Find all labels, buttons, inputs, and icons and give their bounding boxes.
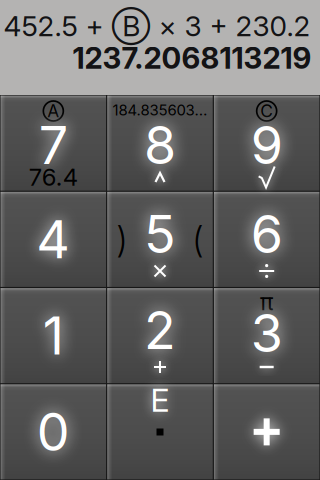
staticText: 1 (43, 304, 64, 367)
button[interactable]: Three, subtract (0, 0, 320, 480)
staticText: E (150, 381, 169, 419)
staticText: 9 (251, 113, 283, 176)
staticText: 76.4 (29, 162, 78, 191)
staticText: 2 (144, 298, 176, 361)
staticText: 0 (37, 400, 70, 463)
staticText: 6 (251, 202, 283, 265)
staticText: C (260, 100, 273, 121)
staticText: 7 (39, 113, 68, 176)
staticText: 452.5 + Ⓑ × 3 + 230.2 (3, 9, 310, 43)
button[interactable]: Seven, memory A (0, 0, 320, 480)
button[interactable]: Five, multiply (0, 0, 320, 480)
button[interactable]: One (0, 0, 320, 480)
staticText: 8 (144, 113, 176, 176)
staticText: 3 (251, 301, 283, 364)
staticText: ) (116, 218, 127, 261)
button[interactable]: Eight, power (0, 0, 320, 480)
button[interactable]: Four (0, 0, 320, 480)
staticText: A (47, 100, 59, 121)
button[interactable]: Two, add (0, 0, 320, 480)
staticText: π (260, 288, 274, 316)
button[interactable]: Plus (0, 0, 320, 480)
staticText: 184.835603… (112, 101, 207, 119)
button[interactable]: Zero (0, 0, 320, 480)
staticText: 4 (36, 208, 70, 271)
button[interactable]: Decimal point, exponent (0, 0, 320, 480)
staticText: ( (192, 218, 203, 261)
button[interactable]: Six, divide (0, 0, 320, 480)
button[interactable]: Nine, square root (0, 0, 320, 480)
staticText: 1237.2068113219 (72, 40, 311, 76)
staticText: 5 (144, 202, 176, 265)
